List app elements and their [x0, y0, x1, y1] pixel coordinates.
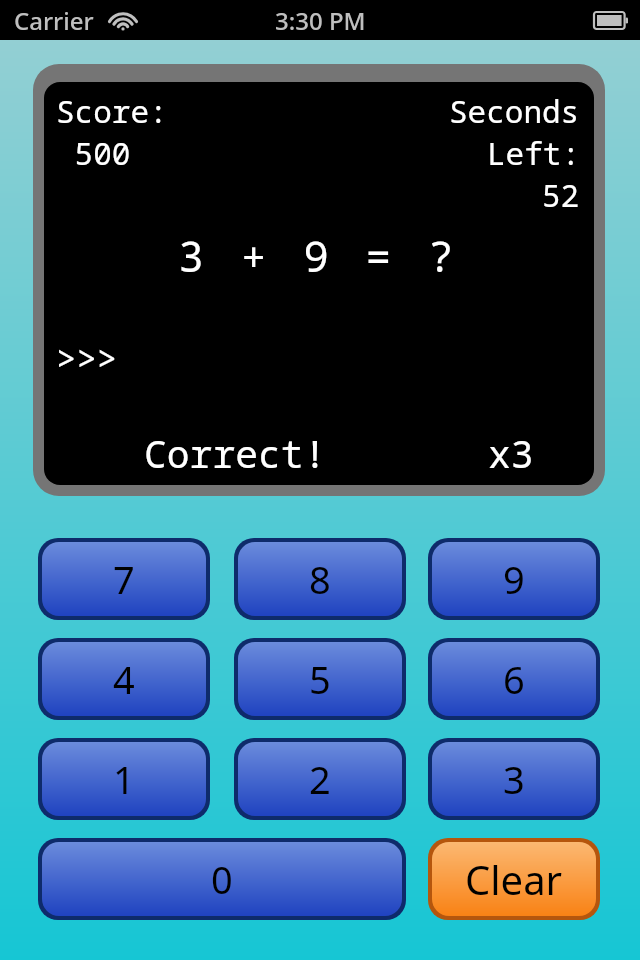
button[interactable]: 7 [38, 538, 210, 620]
button[interactable]: 6 [428, 638, 600, 720]
staticText: Left: [487, 132, 580, 174]
staticText: 6 [503, 653, 525, 705]
staticText: 4 [113, 653, 135, 705]
staticText: 3:30 PM [275, 4, 366, 37]
button[interactable]: 2 [234, 738, 406, 820]
button[interactable]: 3 [428, 738, 600, 820]
staticText: Seconds [449, 90, 580, 132]
staticText: Clear [465, 852, 563, 906]
button[interactable]: 1 [38, 738, 210, 820]
staticText: Correct! [144, 427, 327, 479]
staticText: Carrier [14, 4, 94, 37]
staticText: 2 [309, 753, 331, 805]
staticText: Score: [56, 90, 168, 132]
button[interactable]: 0 [38, 838, 406, 920]
staticText: 3 + 9 = ? [44, 227, 594, 284]
staticText: x3 [488, 427, 534, 479]
staticText: 52 [542, 174, 580, 216]
button[interactable]: 8 [234, 538, 406, 620]
button[interactable]: 4 [38, 638, 210, 720]
staticText: 3 [503, 753, 525, 805]
staticText: 8 [309, 553, 331, 605]
staticText: 9 [503, 553, 525, 605]
staticText: 7 [113, 553, 135, 605]
staticText: >>> [56, 335, 118, 381]
staticText: 500 [56, 132, 131, 174]
staticText: 1 [113, 753, 135, 805]
staticText: 5 [309, 653, 331, 705]
button[interactable]: Clear [428, 838, 600, 920]
staticText: 0 [211, 853, 233, 905]
button[interactable]: 9 [428, 538, 600, 620]
button[interactable]: 5 [234, 638, 406, 720]
